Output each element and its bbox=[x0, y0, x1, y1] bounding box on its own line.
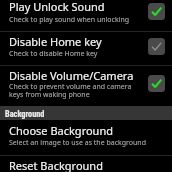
staticText: Play Unlock Sound bbox=[9, 0, 105, 14]
staticText: Disable Home key bbox=[9, 34, 102, 49]
button[interactable]: Play Unlock Sound bbox=[0, 0, 172, 31]
button[interactable]: Choose Background bbox=[0, 120, 172, 155]
staticText: Check to prevent volume and camera keys … bbox=[9, 82, 145, 99]
button[interactable]: Reset Background bbox=[0, 156, 172, 172]
staticText: Choose Background bbox=[9, 123, 113, 138]
other: Enabled checkbox bbox=[148, 75, 165, 92]
other: Disabled checkbox bbox=[148, 38, 165, 55]
other: Enabled checkbox bbox=[148, 3, 165, 20]
staticText: Check to disable Home key bbox=[9, 49, 98, 59]
staticText: Disable Volume/Camera bbox=[9, 68, 134, 83]
staticText: Check to play sound when unlocking bbox=[9, 15, 130, 25]
button[interactable]: Disable Home key bbox=[0, 32, 172, 65]
staticText: Select an image to use as the background bbox=[9, 138, 147, 148]
staticText: Reset Background bbox=[9, 158, 103, 172]
staticText: Background bbox=[5, 109, 45, 119]
button[interactable]: Disable Volume/Camera bbox=[0, 66, 172, 106]
